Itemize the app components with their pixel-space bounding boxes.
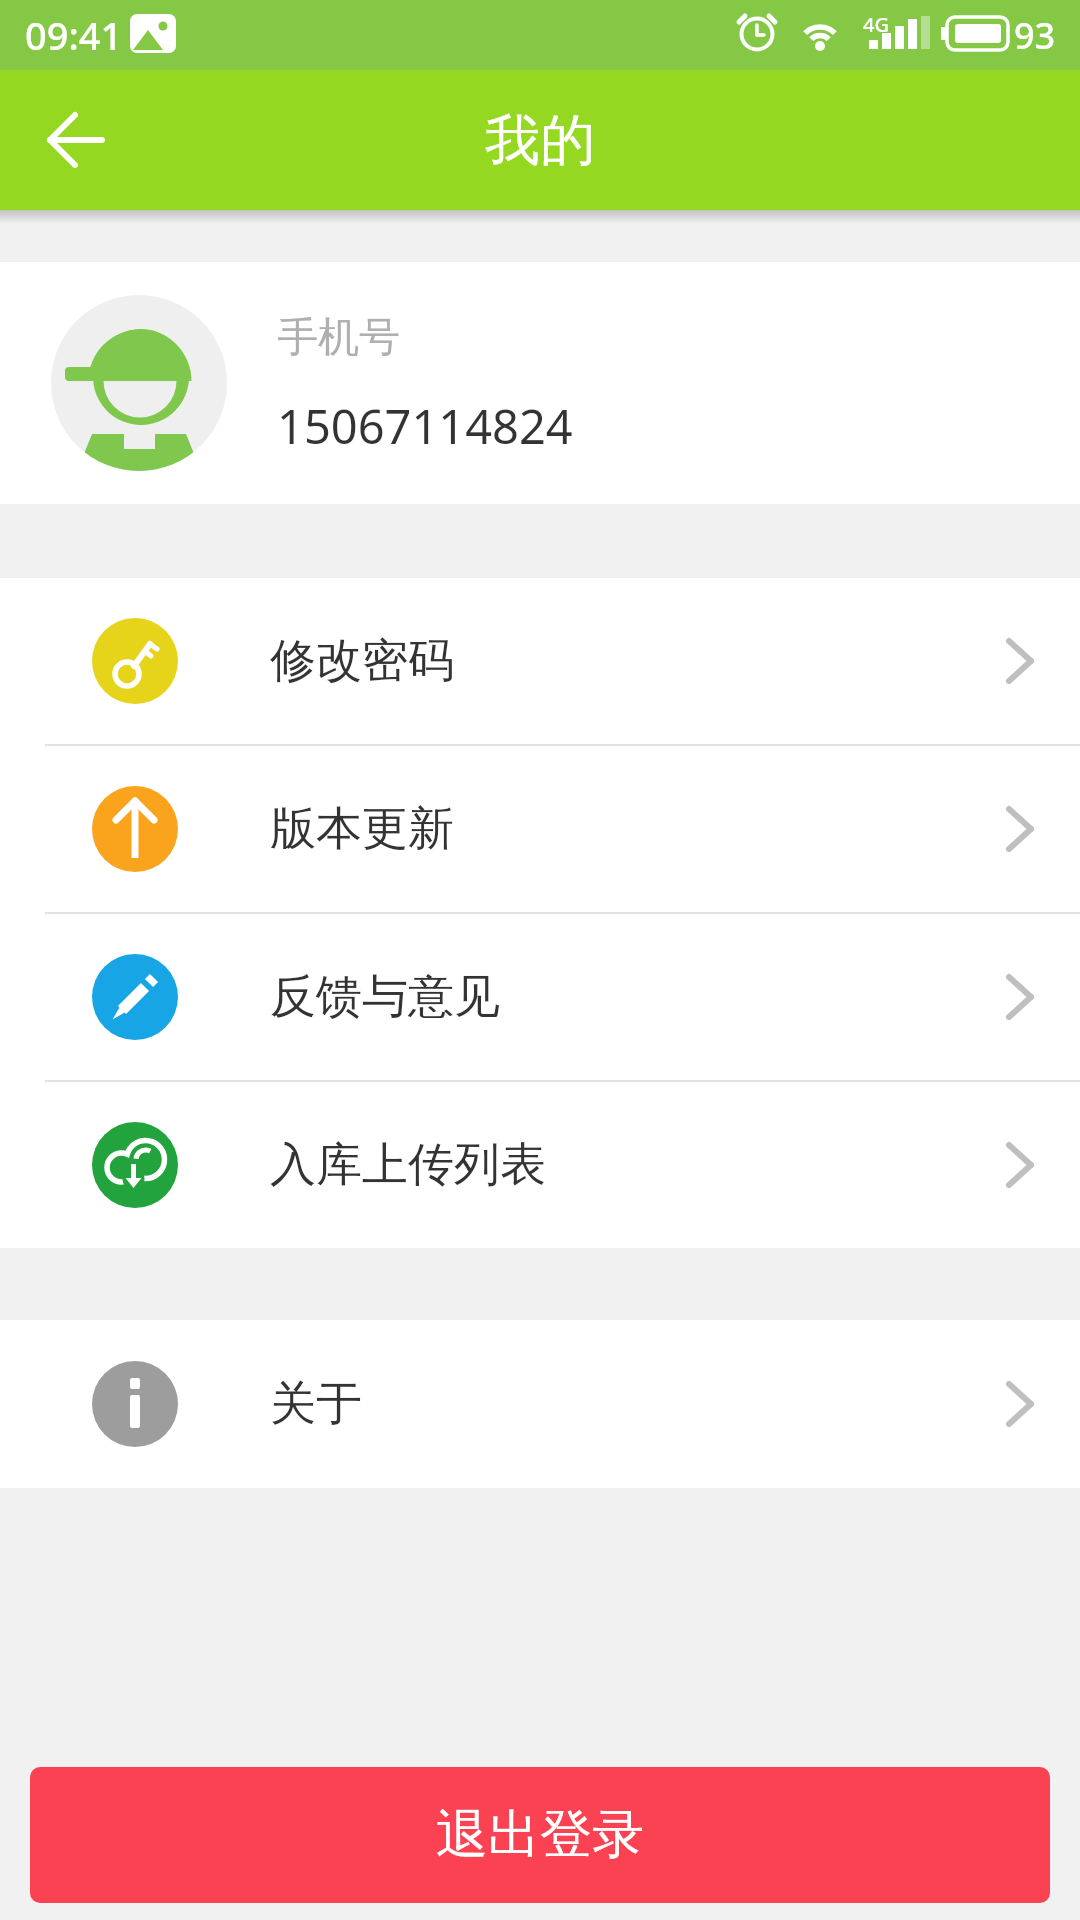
staticText: 93 [1014, 11, 1056, 60]
staticText: 4G [863, 11, 889, 38]
button[interactable]: 退出登录 [30, 1767, 1050, 1903]
staticText: 关于 [270, 1375, 362, 1433]
button[interactable]: 版本更新 [0, 746, 1080, 912]
button[interactable]: 关于 [0, 1320, 1080, 1488]
staticText: 我的 [485, 106, 595, 175]
staticText: 退出登录 [436, 1802, 644, 1868]
staticText: 09:41 [25, 9, 123, 61]
button[interactable]: 入库上传列表 [0, 1082, 1080, 1248]
button[interactable]: 手机号 [0, 262, 1080, 504]
staticText: 手机号 [277, 312, 400, 364]
staticText: 版本更新 [270, 800, 454, 858]
staticText: 15067114824 [277, 394, 573, 458]
staticText: 反馈与意见 [270, 968, 500, 1026]
button[interactable]: 反馈与意见 [0, 914, 1080, 1080]
button[interactable] [36, 100, 116, 180]
staticText: 修改密码 [270, 632, 454, 690]
button[interactable]: 修改密码 [0, 578, 1080, 744]
staticText: 入库上传列表 [270, 1136, 546, 1194]
